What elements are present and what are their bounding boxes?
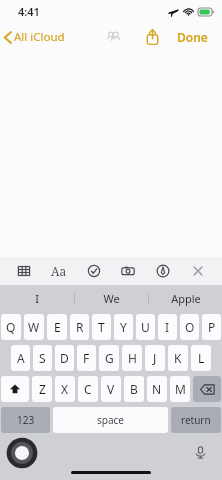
staticText: O — [185, 319, 195, 335]
button[interactable]: E — [47, 314, 67, 340]
button[interactable]: B — [124, 376, 144, 402]
staticText: M — [175, 381, 186, 397]
staticText: F — [83, 350, 90, 366]
button[interactable]: 123 — [1, 407, 50, 433]
button[interactable]: M — [170, 376, 190, 402]
button[interactable]: G — [99, 345, 119, 371]
staticText: P — [208, 319, 216, 335]
button[interactable]: I — [0, 285, 74, 311]
button[interactable]: Markup — [152, 260, 174, 282]
staticText: C — [84, 381, 92, 397]
staticText: X — [61, 381, 69, 397]
button[interactable]: All iCloud — [0, 25, 73, 49]
button[interactable]: Emoji keyboard — [6, 437, 38, 469]
staticText: Q — [6, 319, 16, 335]
button[interactable]: Add people — [101, 24, 127, 50]
button[interactable]: H — [122, 345, 142, 371]
staticText: D — [60, 350, 69, 366]
button[interactable]: Y — [114, 314, 133, 340]
staticText: L — [198, 350, 205, 366]
button[interactable]: Table — [13, 260, 35, 282]
button[interactable]: J — [145, 345, 165, 371]
button[interactable]: Done — [171, 25, 214, 49]
button[interactable]: Camera — [117, 260, 139, 282]
button[interactable]: space — [53, 407, 168, 433]
staticText: H — [128, 350, 137, 366]
button[interactable]: I — [158, 314, 177, 340]
button[interactable]: T — [92, 314, 111, 340]
staticText: B — [130, 381, 138, 397]
staticText: U — [141, 319, 150, 335]
staticText: We — [103, 291, 120, 306]
staticText: J — [153, 350, 157, 366]
staticText: Aa — [51, 263, 67, 279]
staticText: Z — [39, 381, 46, 397]
button[interactable]: R — [70, 314, 89, 340]
button[interactable]: Q — [1, 314, 21, 340]
button[interactable]: Checklist — [83, 260, 105, 282]
staticText: G — [105, 350, 114, 366]
button[interactable]: O — [180, 314, 199, 340]
button[interactable]: N — [147, 376, 167, 402]
staticText: Done — [177, 29, 208, 45]
button[interactable]: Apple — [149, 285, 222, 311]
staticText: A — [17, 350, 25, 366]
button[interactable]: Aa — [48, 260, 70, 282]
staticText: Y — [120, 319, 127, 335]
button[interactable]: A — [11, 345, 30, 371]
staticText: Apple — [171, 291, 201, 306]
staticText: I — [165, 319, 170, 335]
button[interactable]: Backspace — [193, 376, 221, 402]
button[interactable]: W — [24, 314, 44, 340]
staticText: V — [107, 381, 115, 397]
button[interactable]: F — [77, 345, 96, 371]
staticText: N — [152, 381, 162, 397]
staticText: 4:41 — [18, 4, 40, 19]
button[interactable]: Shift — [1, 376, 29, 402]
staticText: space — [97, 413, 124, 427]
button[interactable]: L — [191, 345, 211, 371]
staticText: T — [98, 319, 105, 335]
button[interactable]: Z — [32, 376, 52, 402]
button[interactable]: S — [33, 345, 52, 371]
button[interactable]: D — [55, 345, 74, 371]
staticText: W — [28, 319, 40, 335]
button[interactable]: Close keyboard — [187, 260, 209, 282]
button[interactable]: return — [171, 407, 221, 433]
button[interactable]: P — [202, 314, 221, 340]
button[interactable]: Share — [139, 24, 165, 50]
button[interactable]: X — [55, 376, 75, 402]
staticText: return — [181, 413, 211, 427]
button[interactable]: U — [136, 314, 155, 340]
staticText: S — [39, 350, 46, 366]
button[interactable]: Dictation — [188, 440, 212, 464]
staticText: All iCloud — [14, 29, 65, 45]
staticText: K — [174, 350, 182, 366]
staticText: 123 — [17, 413, 35, 427]
staticText: I — [35, 291, 39, 306]
staticText: E — [54, 319, 61, 335]
button[interactable]: V — [101, 376, 121, 402]
button[interactable]: C — [78, 376, 98, 402]
staticText: R — [76, 319, 84, 335]
button[interactable]: K — [168, 345, 188, 371]
button[interactable]: We — [75, 285, 148, 311]
